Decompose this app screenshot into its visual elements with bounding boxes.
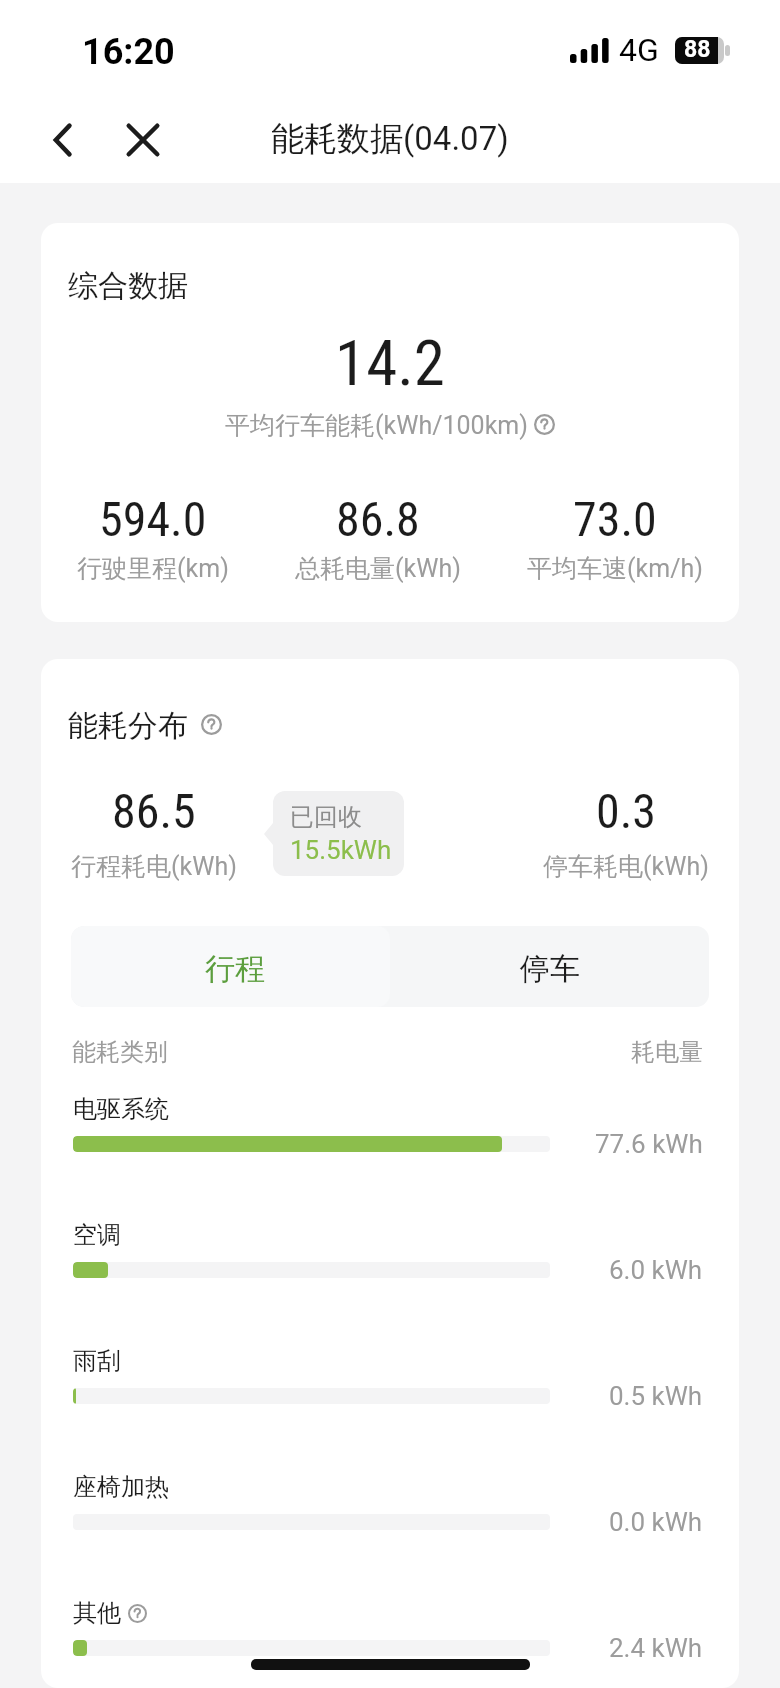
staticText: 4G	[619, 31, 659, 69]
staticText: 0.5 kWh	[609, 1381, 703, 1411]
staticText: 平均车速(km/h)	[527, 553, 703, 584]
button[interactable]: 关于平均行车能耗	[534, 414, 555, 435]
staticText: 15.5kWh	[290, 835, 392, 865]
staticText: 6.0 kWh	[609, 1255, 703, 1285]
staticText: 平均行车能耗(kWh/100km)	[225, 410, 528, 441]
staticText: 雨刮	[73, 1346, 121, 1376]
button[interactable]: 关于能耗分布	[201, 714, 222, 735]
staticText: 综合数据	[68, 267, 188, 305]
staticText: 其他	[73, 1598, 121, 1628]
staticText: 0.3	[596, 783, 657, 839]
button[interactable]: 电驱系统	[41, 1094, 739, 1220]
staticText: 88	[684, 36, 711, 63]
button[interactable]: 关于其他能耗	[128, 1604, 147, 1623]
staticText: 594.0	[99, 491, 207, 547]
staticText: 86.5	[112, 783, 196, 839]
button[interactable]: 座椅加热	[41, 1472, 739, 1598]
staticText: 行程耗电(kWh)	[71, 851, 237, 882]
staticText: 行程	[205, 950, 265, 988]
staticText: 电驱系统	[73, 1094, 169, 1124]
staticText: 空调	[73, 1220, 121, 1250]
button[interactable]: 空调	[41, 1220, 739, 1346]
staticText: 行驶里程(km)	[77, 553, 229, 584]
staticText: 2.4 kWh	[609, 1633, 703, 1663]
button[interactable]: Close	[112, 109, 174, 171]
button[interactable]: 雨刮	[41, 1346, 739, 1472]
staticText: 73.0	[573, 491, 657, 547]
staticText: 停车	[520, 950, 580, 988]
staticText: 停车耗电(kWh)	[543, 851, 709, 882]
staticText: 耗电量	[631, 1037, 703, 1067]
staticText: 16:20	[82, 31, 175, 73]
button[interactable]: 其他	[41, 1598, 739, 1688]
staticText: 77.6 kWh	[595, 1129, 703, 1159]
staticText: 能耗分布	[68, 707, 188, 745]
staticText: 能耗类别	[72, 1037, 168, 1067]
staticText: 座椅加热	[73, 1472, 169, 1502]
staticText: 86.8	[336, 491, 420, 547]
button[interactable]: 行程	[71, 926, 390, 1007]
staticText: 14.2	[41, 327, 739, 401]
staticText: 已回收	[290, 802, 362, 832]
staticText: 能耗数据(04.07)	[271, 118, 509, 160]
staticText: 0.0 kWh	[609, 1507, 703, 1537]
staticText: 总耗电量(kWh)	[295, 553, 461, 584]
button[interactable]: Back	[32, 109, 94, 171]
button[interactable]: 停车	[390, 926, 709, 1007]
